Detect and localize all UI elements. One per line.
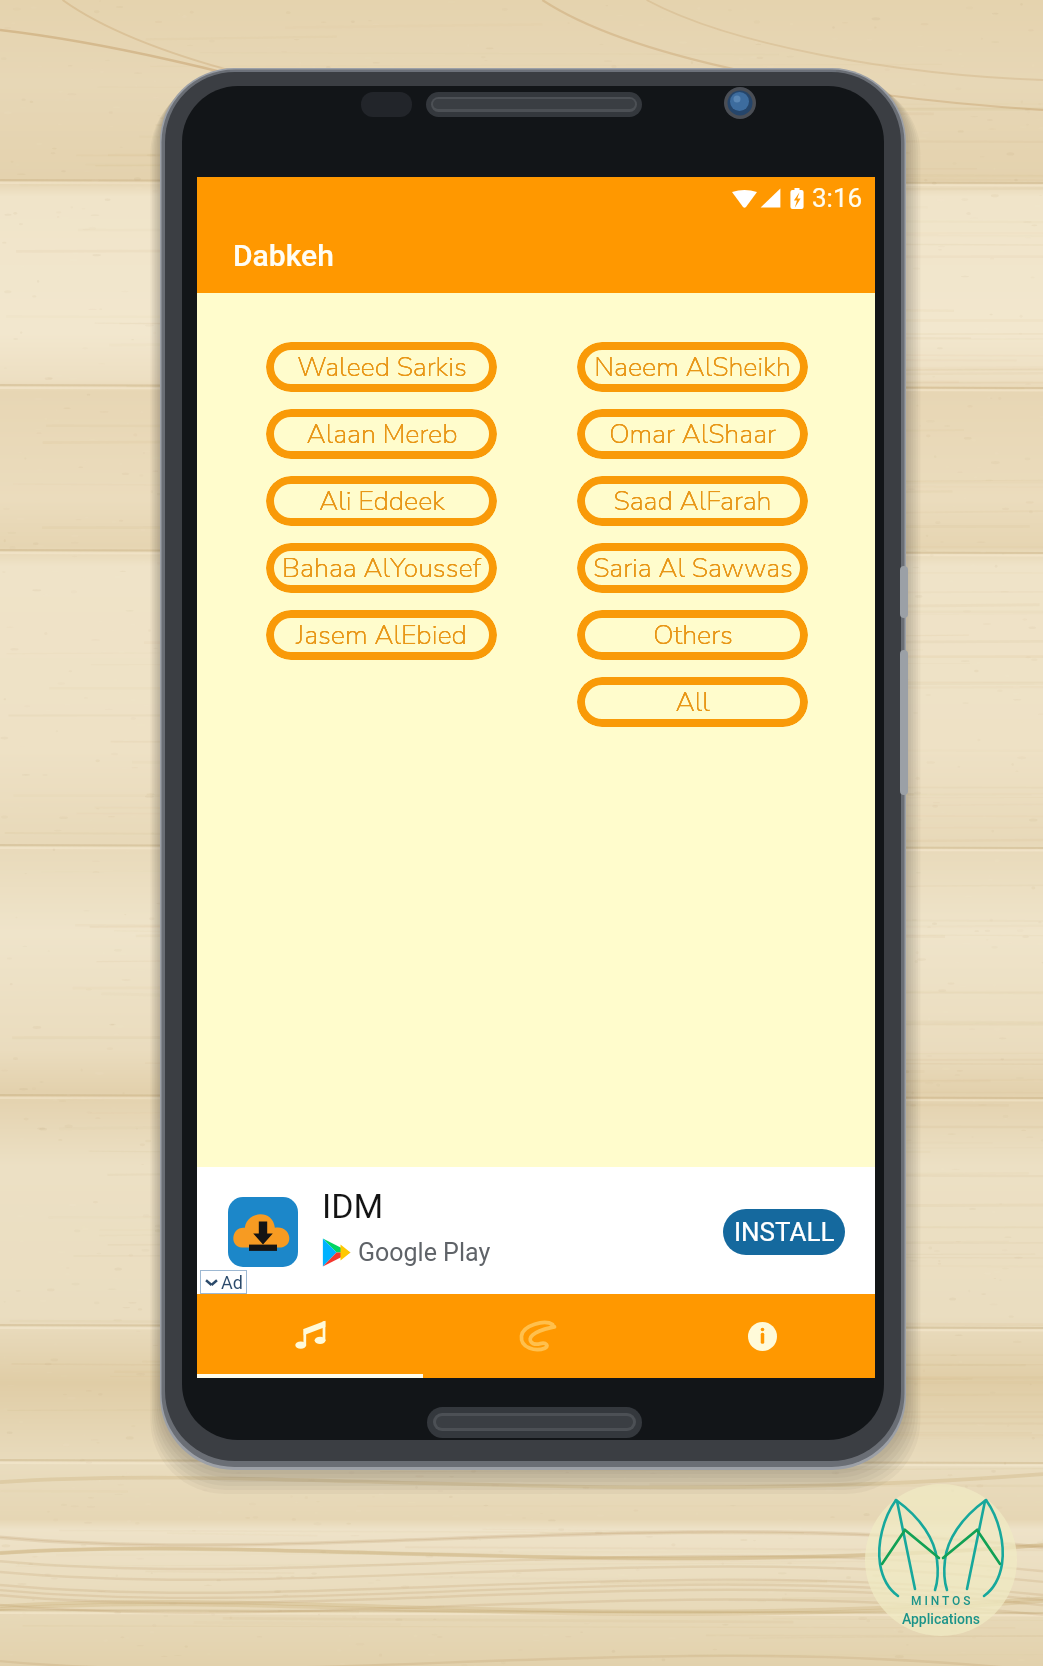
staticText: Jasem AlEbied: [296, 617, 467, 654]
staticText: Alaan Mereb: [306, 416, 458, 453]
staticText: All: [675, 684, 710, 721]
staticText: Dabkeh: [233, 238, 334, 273]
staticText: Others: [653, 617, 733, 654]
staticText: Naeem AlSheikh: [594, 349, 791, 386]
staticText: Saad AlFarah: [613, 483, 772, 520]
button[interactable]: Omar AlShaar: [577, 409, 808, 459]
staticText: 3:16: [812, 183, 863, 213]
staticText: Jasem AlEbied: [296, 617, 467, 654]
staticText: Ali Eddeek: [319, 483, 445, 520]
button[interactable]: Naeem AlSheikh: [577, 342, 808, 392]
button[interactable]: Alaan Mereb: [266, 409, 497, 459]
button[interactable]: Saria Al Sawwas: [577, 543, 808, 593]
staticText: Omar AlShaar: [609, 416, 776, 453]
staticText: Bahaa AlYoussef: [282, 550, 481, 587]
staticText: Omar AlShaar: [609, 416, 776, 453]
staticText: Google Play: [358, 1238, 491, 1267]
button[interactable]: Ali Eddeek: [266, 476, 497, 526]
staticText: Alaan Mereb: [306, 416, 458, 453]
button[interactable]: Saad AlFarah: [577, 476, 808, 526]
staticText: Others: [653, 617, 733, 654]
staticText: Saria Al Sawwas: [593, 550, 793, 587]
staticText: Waleed Sarkis: [297, 349, 467, 386]
staticText: Applications: [902, 1611, 981, 1627]
button[interactable]: Waleed Sarkis: [266, 342, 497, 392]
staticText: Waleed Sarkis: [297, 349, 467, 386]
staticText: Saad AlFarah: [613, 483, 772, 520]
staticText: Naeem AlSheikh: [594, 349, 791, 386]
staticText: Alaan Mereb: [306, 416, 458, 453]
staticText: Ali Eddeek: [319, 483, 445, 520]
button[interactable]: INSTALL: [723, 1209, 845, 1255]
staticText: Others: [653, 617, 733, 654]
staticText: Jasem AlEbied: [296, 617, 467, 654]
button[interactable]: Jasem AlEbied: [266, 610, 497, 660]
button[interactable]: Dances: [423, 1294, 649, 1378]
staticText: Saria Al Sawwas: [593, 550, 793, 587]
staticText: Bahaa AlYoussef: [282, 550, 481, 587]
staticText: Waleed Sarkis: [297, 349, 467, 386]
staticText: Omar AlShaar: [609, 416, 776, 453]
button[interactable]: Ad: [200, 1270, 247, 1294]
button[interactable]: Others: [577, 610, 808, 660]
button[interactable]: Bahaa AlYoussef: [266, 543, 497, 593]
staticText: All: [675, 684, 710, 721]
staticText: M I N T O S: [911, 1594, 971, 1608]
button[interactable]: All: [577, 677, 808, 727]
staticText: Saad AlFarah: [613, 483, 772, 520]
staticText: Ad: [221, 1272, 243, 1293]
staticText: Saria Al Sawwas: [593, 550, 793, 587]
staticText: Ali Eddeek: [319, 483, 445, 520]
staticText: IDM: [322, 1186, 384, 1226]
staticText: INSTALL: [734, 1217, 835, 1247]
staticText: Bahaa AlYoussef: [282, 550, 481, 587]
button[interactable]: Songs: [197, 1294, 423, 1378]
staticText: All: [675, 684, 710, 721]
button[interactable]: Info: [649, 1294, 875, 1378]
staticText: Naeem AlSheikh: [594, 349, 791, 386]
